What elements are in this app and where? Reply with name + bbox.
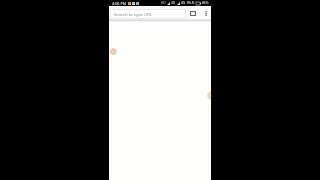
staticText: 4G [181, 1, 186, 5]
staticText: 4:06 PM [112, 1, 127, 6]
staticText: 86% [202, 1, 209, 5]
staticText: Wi-Fi [187, 1, 195, 5]
staticText: HD [161, 1, 166, 5]
button[interactable]: Search or type URL [110, 9, 186, 19]
button[interactable]: Switch tabs [187, 7, 199, 19]
staticText: 4G [171, 1, 176, 5]
button[interactable]: More options [200, 7, 211, 19]
staticText: Search or type URL [114, 11, 153, 17]
